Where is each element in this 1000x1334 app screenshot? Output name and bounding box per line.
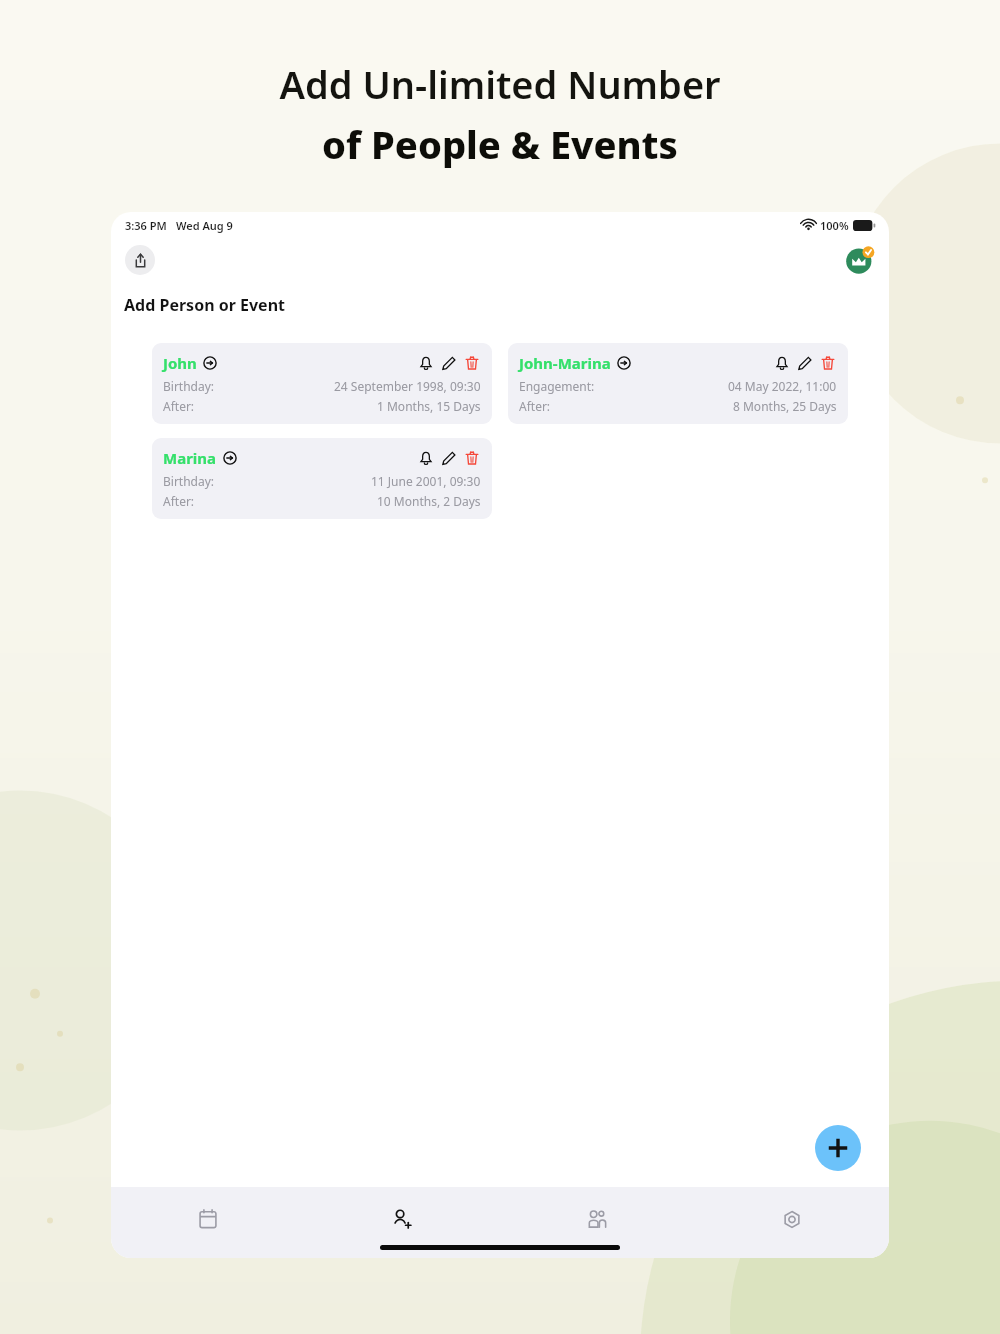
staticText: 04 May 2022, 11:00 xyxy=(728,378,837,394)
staticText: 100% xyxy=(820,218,849,233)
staticText: Birthday: xyxy=(163,378,215,394)
staticText: 11 June 2001, 09:30 xyxy=(371,473,481,489)
button[interactable]: Edit xyxy=(440,354,458,372)
staticText: Wed Aug 9 xyxy=(176,218,233,233)
staticText: After: xyxy=(519,398,551,414)
button[interactable]: Notification xyxy=(773,354,791,372)
staticText: John-Marina xyxy=(519,353,611,373)
staticText: 8 Months, 25 Days xyxy=(733,398,837,414)
staticText: Birthday: xyxy=(163,473,215,489)
button[interactable]: Delete xyxy=(463,354,481,372)
staticText: Marina xyxy=(163,448,217,468)
staticText: Engagement: xyxy=(519,378,595,394)
button[interactable]: Delete xyxy=(463,449,481,467)
staticText: 3:36 PM xyxy=(125,218,167,233)
button[interactable]: Edit xyxy=(440,449,458,467)
staticText: 24 September 1998, 09:30 xyxy=(334,378,481,394)
button[interactable]: Notification xyxy=(417,354,435,372)
button[interactable]: Marina xyxy=(152,438,492,519)
button[interactable]: Edit xyxy=(796,354,814,372)
staticText: John xyxy=(163,353,197,373)
other: Open details xyxy=(203,356,217,370)
staticText: of People & Events xyxy=(322,118,678,170)
button[interactable]: Premium xyxy=(845,245,875,275)
staticText: 1 Months, 15 Days xyxy=(377,398,481,414)
button[interactable]: Add person or event xyxy=(815,1125,861,1171)
button[interactable]: People xyxy=(499,1207,694,1241)
button[interactable]: Notification xyxy=(417,449,435,467)
staticText: Add Un-limited Number xyxy=(279,58,721,110)
button[interactable]: John xyxy=(152,343,492,424)
staticText: Add Person or Event xyxy=(124,294,285,316)
button[interactable]: John-Marina xyxy=(508,343,848,424)
button[interactable]: Calendar xyxy=(111,1207,305,1241)
button[interactable]: Share xyxy=(125,245,155,275)
other: Open details xyxy=(617,356,631,370)
button[interactable]: Delete xyxy=(819,354,837,372)
other: Open details xyxy=(223,451,237,465)
staticText: 10 Months, 2 Days xyxy=(377,493,481,509)
staticText: After: xyxy=(163,493,195,509)
staticText: After: xyxy=(163,398,195,414)
button[interactable]: Add person xyxy=(305,1207,499,1241)
button[interactable]: Settings xyxy=(694,1207,889,1241)
